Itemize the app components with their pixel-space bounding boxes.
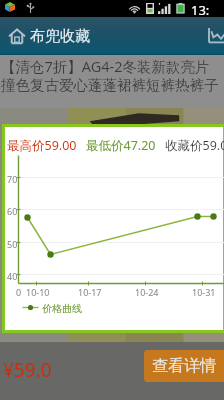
- staticText: 60: [7, 205, 18, 217]
- staticText: 最低价47.20: [86, 137, 156, 154]
- staticText: 13:: [191, 1, 210, 18]
- staticText: 10-24: [135, 286, 159, 298]
- staticText: 布兜收藏: [30, 27, 90, 46]
- staticText: 10-10: [26, 286, 50, 298]
- staticText: 最高价59.00: [7, 137, 77, 154]
- button[interactable]: Home: [9, 29, 25, 44]
- staticText: 撞色复古爱心蓬蓬裙裤短裤热裤子: [1, 76, 219, 94]
- staticText: 10-17: [78, 286, 102, 298]
- staticText: 10-31: [192, 286, 216, 298]
- staticText: 50: [7, 238, 18, 250]
- staticText: 价格曲线: [42, 302, 82, 315]
- staticText: 40: [7, 270, 18, 282]
- staticText: 0: [16, 286, 22, 298]
- staticText: ¥59.0: [3, 357, 52, 383]
- staticText: 收藏价59.00: [165, 137, 224, 154]
- staticText: 【清仓7折】AG4-2冬装新款亮片: [1, 56, 210, 76]
- button[interactable]: 查看详情: [144, 350, 224, 382]
- staticText: 70: [7, 173, 18, 185]
- button[interactable]: Price chart: [207, 28, 224, 43]
- staticText: 查看详情: [152, 356, 216, 376]
